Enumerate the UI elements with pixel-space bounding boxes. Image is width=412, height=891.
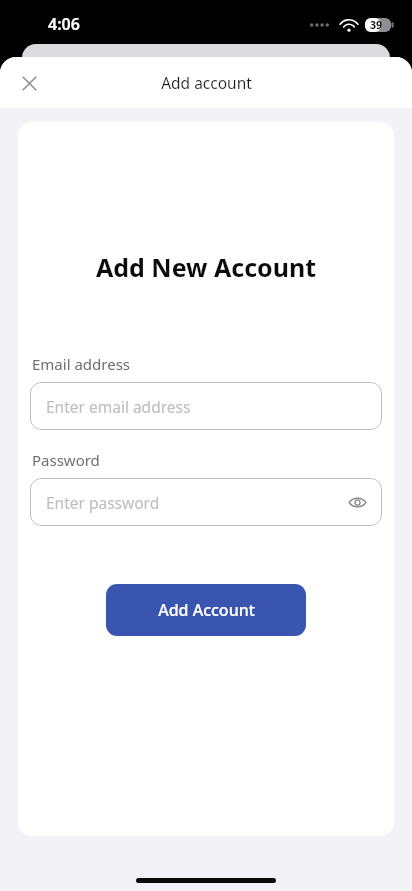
button[interactable]: Enter email address (30, 382, 382, 430)
staticText: Password (32, 450, 100, 470)
staticText: Add account (161, 72, 252, 93)
staticText: Enter email address (46, 396, 191, 417)
button[interactable]: Add Account (106, 584, 306, 636)
staticText: Add Account (158, 599, 255, 621)
staticText: Add New Account (30, 250, 382, 284)
staticText: 4:06 (48, 13, 80, 35)
staticText: Email address (32, 354, 131, 374)
staticText: Enter password (46, 492, 160, 513)
button[interactable]: Close (12, 66, 46, 100)
button[interactable]: Show password (340, 485, 374, 519)
staticText: 39 (370, 18, 383, 32)
button[interactable]: Enter password (30, 478, 382, 526)
